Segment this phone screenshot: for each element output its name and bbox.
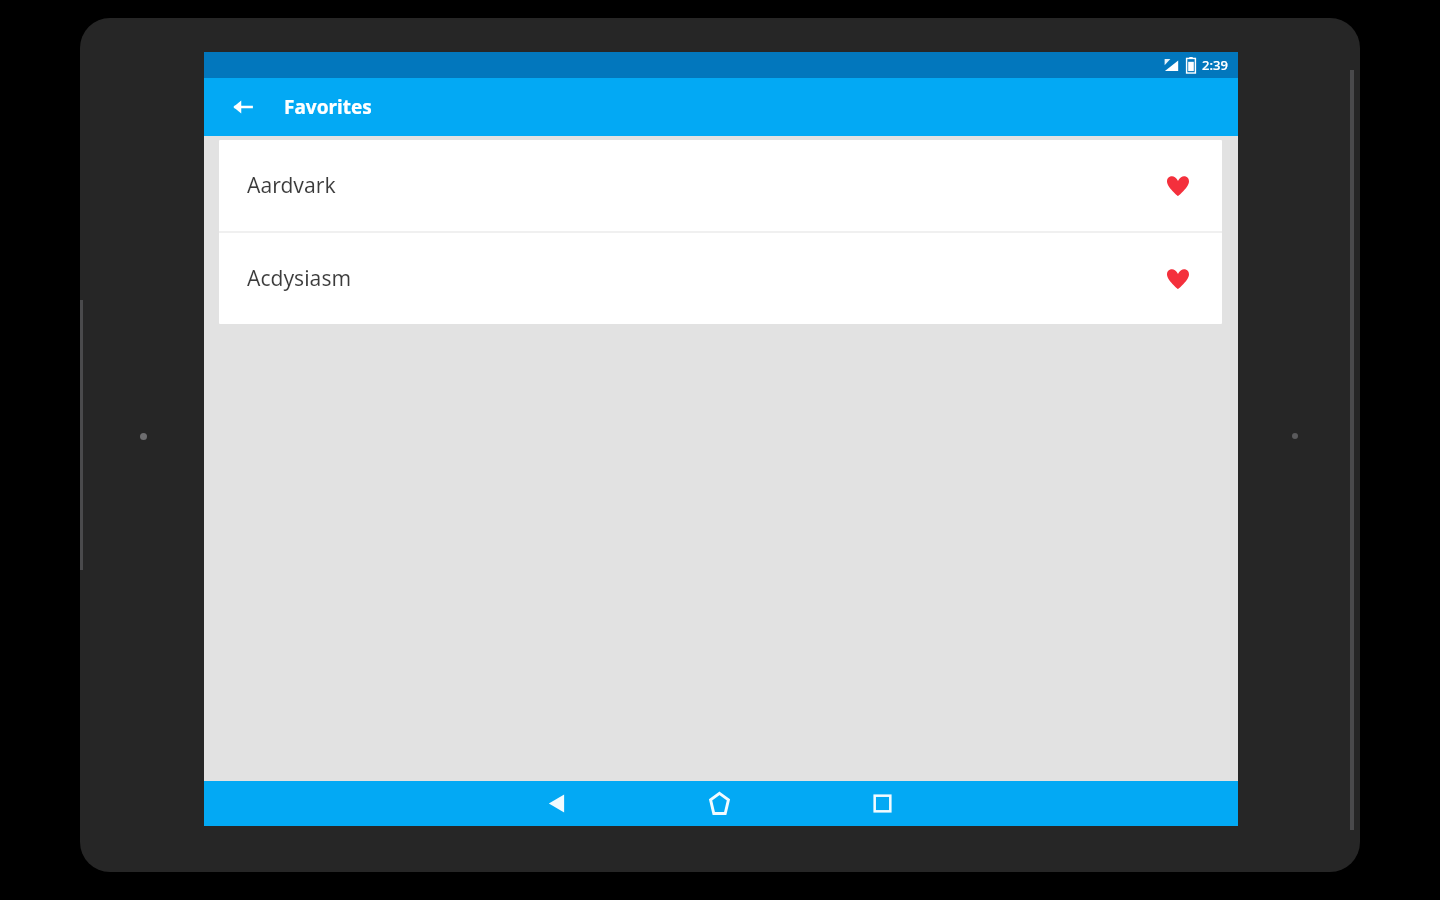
staticText: 2:39 [1202,56,1228,74]
button[interactable]: Home [695,781,743,826]
button[interactable]: Remove from favorites [1154,255,1202,303]
staticText: Favorites [284,94,372,120]
staticText: Acdysiasm [247,264,352,293]
button[interactable]: Recent apps [858,781,906,826]
button[interactable]: Back [532,781,580,826]
button[interactable]: Navigate up [219,83,267,131]
button[interactable]: Acdysiasm [219,233,1222,324]
button[interactable]: Remove from favorites [1154,162,1202,210]
button[interactable]: Aardvark [219,140,1222,231]
staticText: Aardvark [247,171,336,200]
